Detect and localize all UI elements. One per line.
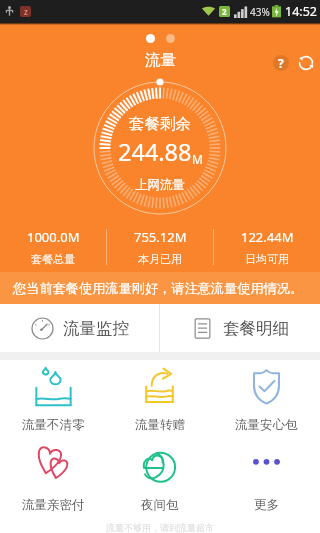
button[interactable]: 帮助	[269, 51, 293, 75]
staticText: 755.12M	[134, 228, 187, 246]
staticText: 1000.0M	[27, 228, 80, 246]
staticText: 流量安心包	[235, 417, 298, 433]
button[interactable]: 1000.0M	[0, 228, 106, 266]
staticText: 日均可用	[245, 252, 289, 266]
button[interactable]: 755.12M	[107, 228, 213, 266]
button[interactable]: 122.44M	[214, 228, 320, 266]
staticText: 43%	[250, 5, 270, 19]
staticText: 本月已用	[138, 252, 182, 266]
button[interactable]: 套餐明细	[160, 304, 320, 352]
button[interactable]: 流量转赠	[106, 360, 213, 440]
staticText: 流量	[145, 50, 176, 70]
button[interactable]: 刷新	[294, 51, 318, 75]
staticText: z	[24, 6, 28, 17]
staticText: 您当前套餐使用流量刚好，请注意流量使用情况。	[13, 280, 304, 297]
staticText: 2	[222, 6, 227, 17]
staticText: 14:52	[285, 3, 317, 20]
staticText: 上网流量	[135, 177, 185, 193]
staticText: 流量监控	[63, 318, 129, 339]
staticText: 122.44M	[241, 228, 294, 246]
staticText: M	[192, 151, 203, 167]
button[interactable]: 夜间包	[106, 440, 213, 520]
button[interactable]: 流量监控	[0, 304, 159, 352]
staticText: 套餐明细	[223, 318, 289, 339]
button[interactable]: 流量亲密付	[0, 440, 106, 520]
staticText: 流量不够用，请到流量超市	[0, 522, 320, 533]
staticText: 套餐剩余	[129, 114, 191, 134]
staticText: 更多	[254, 497, 279, 513]
button[interactable]: 流量安心包	[213, 360, 320, 440]
staticText: ?	[278, 55, 284, 71]
staticText: 套餐总量	[31, 252, 75, 266]
staticText: 流量亲密付	[22, 497, 85, 513]
staticText: 244.88	[118, 136, 192, 168]
button[interactable]: 流量不清零	[0, 360, 106, 440]
staticText: 流量转赠	[135, 417, 185, 433]
staticText: 流量不清零	[22, 417, 85, 433]
staticText: 夜间包	[141, 497, 179, 513]
button[interactable]: 更多	[213, 440, 320, 520]
